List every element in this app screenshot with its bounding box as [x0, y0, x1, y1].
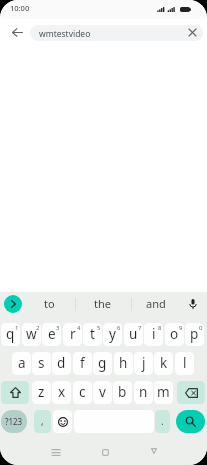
staticText: i	[152, 325, 156, 343]
staticText: g	[98, 354, 107, 372]
staticText: 6	[117, 324, 121, 332]
staticText: k	[160, 354, 168, 372]
staticText: ?123	[5, 416, 23, 427]
button[interactable]: o	[165, 323, 184, 346]
staticText: y	[109, 325, 116, 343]
staticText: u	[129, 325, 138, 343]
button[interactable]: and	[132, 292, 180, 314]
staticText: the	[94, 296, 111, 311]
staticText: 0	[199, 324, 203, 332]
staticText: 5	[97, 324, 101, 332]
button[interactable]: Clear	[182, 22, 202, 42]
staticText: 10:00	[10, 3, 30, 13]
staticText: .	[161, 414, 164, 428]
button[interactable]: k	[154, 352, 173, 375]
button[interactable]: Voice input	[183, 294, 203, 314]
button[interactable]: l	[175, 352, 194, 375]
button[interactable]: n	[134, 381, 153, 404]
staticText: d	[57, 354, 66, 372]
button[interactable]: h	[114, 352, 133, 375]
staticText: v	[99, 383, 106, 401]
button[interactable]: q	[1, 323, 20, 346]
staticText: s	[38, 354, 45, 372]
button[interactable]: Home	[92, 441, 118, 463]
button[interactable]: d	[52, 352, 71, 375]
button[interactable]: Emoji	[53, 410, 72, 433]
staticText: z	[38, 383, 45, 401]
staticText: w	[26, 325, 37, 343]
button[interactable]: c	[73, 381, 92, 404]
staticText: n	[139, 383, 148, 401]
button[interactable]: g	[93, 352, 112, 375]
staticText: o	[170, 325, 179, 343]
button[interactable]: x	[52, 381, 71, 404]
button[interactable]: Search	[176, 410, 205, 433]
button[interactable]: f	[73, 352, 92, 375]
button[interactable]: ,	[34, 410, 51, 433]
staticText: x	[58, 383, 66, 401]
button[interactable]: u	[124, 323, 143, 346]
staticText: t	[90, 325, 95, 343]
staticText: to	[44, 296, 55, 311]
staticText: b	[118, 383, 127, 401]
button[interactable]: to	[24, 292, 75, 314]
staticText: wmtestvideo	[39, 28, 91, 40]
staticText: 9	[179, 324, 183, 332]
staticText: m	[157, 383, 170, 401]
staticText: r	[70, 325, 76, 343]
button[interactable]: v	[93, 381, 112, 404]
staticText: a	[18, 354, 26, 372]
button[interactable]: a	[12, 352, 31, 375]
button[interactable]: wmtestvideo	[30, 25, 203, 41]
button[interactable]: p	[185, 323, 204, 346]
staticText: p	[190, 325, 199, 343]
staticText: 7	[138, 324, 142, 332]
button[interactable]: Back	[3, 18, 31, 46]
staticText: q	[6, 325, 15, 343]
button[interactable]: m	[154, 381, 173, 404]
staticText: 2	[36, 324, 40, 332]
staticText: 3	[56, 324, 60, 332]
button[interactable]: More suggestions	[4, 295, 22, 313]
button[interactable]: Shift	[1, 381, 29, 404]
button[interactable]: b	[113, 381, 132, 404]
button[interactable]: z	[32, 381, 51, 404]
button[interactable]: ?123	[1, 410, 27, 433]
button[interactable]: Back	[141, 440, 167, 462]
button[interactable]: r	[63, 323, 82, 346]
button[interactable]: the	[76, 292, 128, 314]
button[interactable]: j	[134, 352, 153, 375]
staticText: ,	[41, 414, 44, 428]
staticText: h	[119, 354, 128, 372]
button[interactable]: e	[42, 323, 61, 346]
button[interactable]: w	[22, 323, 41, 346]
button[interactable]: i	[144, 323, 163, 346]
button[interactable]: y	[103, 323, 122, 346]
staticText: j	[142, 354, 146, 372]
staticText: 4	[77, 324, 81, 332]
staticText: f	[80, 354, 85, 372]
staticText: and	[146, 296, 166, 311]
staticText: c	[79, 383, 86, 401]
staticText: 1	[15, 324, 19, 332]
button[interactable]: s	[32, 352, 51, 375]
staticText: e	[48, 325, 56, 343]
button[interactable]: Backspace	[177, 381, 205, 404]
button[interactable]: t	[83, 323, 102, 346]
staticText: 8	[158, 324, 162, 332]
button[interactable]: .	[155, 410, 170, 433]
staticText: l	[183, 354, 187, 372]
button[interactable]: Recents	[43, 441, 69, 463]
